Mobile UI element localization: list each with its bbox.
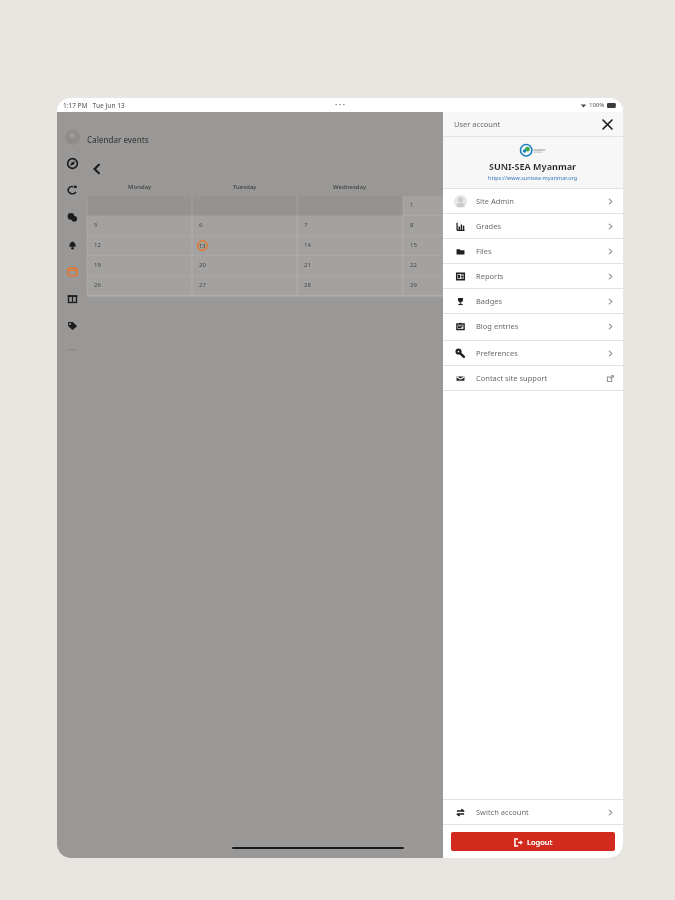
staticText: 5	[94, 221, 98, 229]
button[interactable]: Preferences	[443, 341, 623, 365]
button[interactable]: Logout	[451, 832, 615, 851]
button[interactable]: 6	[192, 216, 297, 236]
button[interactable]: 14	[297, 236, 403, 256]
staticText: Contact site support	[476, 373, 607, 383]
staticText: Reports	[476, 271, 607, 281]
button[interactable]: Grades	[443, 214, 623, 238]
staticText: Site Admin	[476, 196, 607, 206]
staticText: 7	[304, 221, 308, 229]
button[interactable]: 12	[87, 236, 192, 256]
staticText: Blog entries	[476, 321, 607, 331]
staticText: Monday	[128, 183, 152, 191]
button[interactable]: Switch account	[443, 800, 623, 824]
button[interactable]: 23	[509, 256, 615, 276]
staticText: 29	[410, 281, 417, 289]
staticText: Grades	[476, 221, 607, 231]
button[interactable]: 26	[87, 276, 192, 296]
staticText: 27	[199, 281, 206, 289]
staticText: 26	[94, 281, 101, 289]
staticText: 23	[516, 261, 523, 269]
staticText: 21	[304, 261, 311, 269]
staticText: Tuesday	[233, 183, 257, 191]
button[interactable]: 22	[403, 256, 509, 276]
staticText: Thursday	[443, 183, 470, 191]
staticText: Badges	[476, 296, 607, 306]
button[interactable]: 8	[403, 216, 509, 236]
staticText: 6	[199, 221, 203, 229]
button[interactable]: 19	[87, 256, 192, 276]
button[interactable]: Contact site support	[443, 366, 623, 390]
staticText: Files	[476, 246, 607, 256]
button[interactable]: 16	[509, 236, 615, 256]
staticText: 8	[410, 221, 414, 229]
staticText: • • •	[68, 347, 77, 354]
button[interactable]: 9	[509, 216, 615, 236]
button[interactable]: 2	[509, 196, 615, 216]
staticText: Wednesday	[333, 183, 367, 191]
staticText: Preferences	[476, 348, 607, 358]
staticText: https://www.sunisea-myanmar.org	[488, 174, 578, 181]
staticText: 30	[516, 281, 523, 289]
staticText: 100%	[589, 101, 605, 109]
staticText: Calendar events	[87, 134, 149, 145]
button[interactable]: Files	[443, 239, 623, 263]
button[interactable]: 30	[509, 276, 615, 296]
staticText: • • •	[335, 101, 345, 109]
staticText: 20	[199, 261, 206, 269]
staticText: 13	[199, 242, 206, 249]
button[interactable]: Reports	[443, 264, 623, 288]
button[interactable]: 13	[192, 236, 297, 256]
button[interactable]: Blog entries	[443, 314, 623, 338]
button[interactable]: 28	[297, 276, 403, 296]
button[interactable]: 20	[192, 256, 297, 276]
button[interactable]: 27	[192, 276, 297, 296]
button[interactable]: 5	[87, 216, 192, 236]
staticText: June 2023	[515, 163, 557, 175]
staticText: 1	[410, 201, 414, 209]
button[interactable]: Badges	[443, 289, 623, 313]
staticText: 1:17 PM Tue Jun 13	[63, 101, 125, 110]
button[interactable]: Site Admin	[443, 189, 623, 213]
staticText: 15	[410, 241, 417, 249]
staticText: 22	[410, 261, 417, 269]
staticText: 19	[94, 261, 101, 269]
staticText: Switch account	[476, 807, 607, 817]
button[interactable]: 15	[403, 236, 509, 256]
button[interactable]: 7	[297, 216, 403, 236]
button[interactable]: 29	[403, 276, 509, 296]
staticText: 28	[304, 281, 311, 289]
staticText: 12	[94, 241, 101, 249]
button[interactable]: Close	[599, 116, 615, 132]
button[interactable]: 1	[403, 196, 509, 216]
staticText: 14	[304, 241, 311, 249]
button[interactable]: 21	[297, 256, 403, 276]
staticText: Friday	[553, 183, 571, 191]
staticText: User account	[454, 119, 501, 129]
staticText: SUNI-SEA Myanmar	[489, 160, 577, 172]
staticText: Logout	[527, 837, 553, 847]
